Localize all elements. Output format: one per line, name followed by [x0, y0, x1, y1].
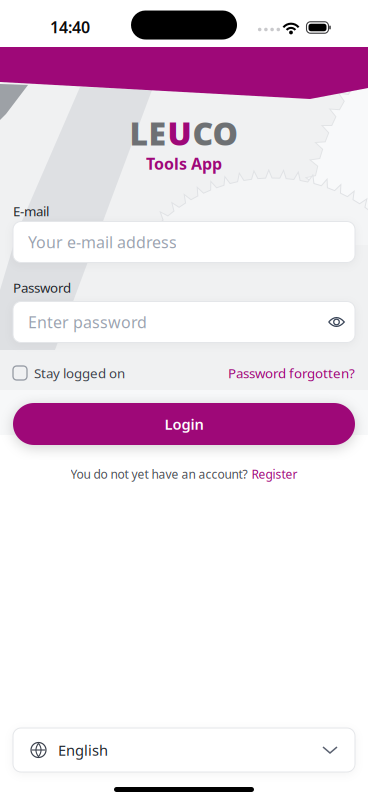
- staticText: U: [167, 112, 191, 154]
- button[interactable]: Password forgotten?: [228, 364, 355, 382]
- staticText: Password forgotten?: [228, 364, 355, 382]
- button[interactable]: Show password: [321, 307, 351, 337]
- staticText: LE: [129, 112, 166, 154]
- staticText: Stay logged on: [34, 364, 125, 382]
- staticText: Your e-mail address: [28, 231, 177, 253]
- button[interactable]: Password: [13, 301, 355, 342]
- staticText: 14:40: [50, 16, 90, 38]
- button[interactable]: Language: English: [13, 728, 355, 772]
- button[interactable]: Register: [251, 466, 297, 482]
- button[interactable]: Login: [13, 403, 355, 445]
- staticText: Tools App: [146, 153, 222, 174]
- staticText: CO: [192, 112, 238, 154]
- staticText: You do not yet have an account?: [70, 466, 247, 482]
- button[interactable]: E-mail: [13, 221, 355, 262]
- staticText: Password: [13, 279, 71, 296]
- staticText: Login: [164, 414, 203, 434]
- staticText: Enter password: [28, 311, 147, 333]
- button[interactable]: Stay logged on: [13, 364, 125, 382]
- staticText: Register: [251, 466, 297, 482]
- staticText: E-mail: [13, 202, 49, 220]
- staticText: English: [58, 740, 108, 760]
